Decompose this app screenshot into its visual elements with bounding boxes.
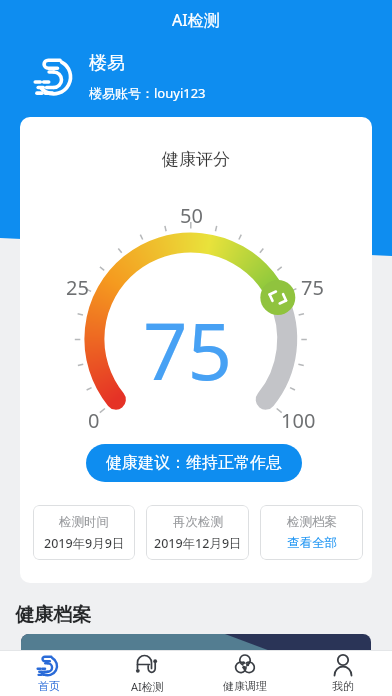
button[interactable]: 健康调理 (196, 650, 294, 696)
staticText: 25 (66, 274, 89, 296)
staticText: 楼易账号：louyi123 (89, 84, 206, 102)
button[interactable]: AI检测 (98, 650, 196, 696)
staticText: 检测档案 (287, 514, 337, 530)
staticText: 检测时间 (59, 514, 109, 530)
button[interactable] (21, 634, 371, 664)
button[interactable]: 首页 (0, 650, 98, 696)
staticText: 100 (281, 407, 316, 429)
button[interactable]: 我的 (294, 650, 392, 696)
button[interactable]: 再次检测 (146, 505, 249, 560)
staticText: 楼易 (89, 52, 125, 75)
staticText: 我的 (332, 679, 354, 693)
staticText: 0 (88, 407, 100, 429)
staticText: 健康建议：维持正常作息 (106, 453, 282, 473)
staticText: AI检测 (172, 9, 220, 31)
staticText: 首页 (38, 679, 60, 693)
staticText: 2019年12月9日 (154, 535, 242, 552)
staticText: 查看全部 (287, 535, 337, 551)
staticText: 2019年9月9日 (44, 535, 125, 552)
staticText: AI检测 (131, 679, 164, 694)
staticText: 再次检测 (173, 514, 223, 530)
staticText: 健康档案 (15, 603, 91, 627)
button[interactable]: 检测时间 (33, 505, 135, 560)
staticText: 75 (143, 297, 233, 387)
staticText: 健康调理 (223, 679, 267, 693)
button[interactable]: 健康建议：维持正常作息 (86, 444, 302, 482)
staticText: 健康评分 (162, 149, 230, 170)
staticText: 75 (301, 274, 324, 296)
button[interactable]: 检测档案 (260, 505, 363, 560)
staticText: 50 (180, 202, 203, 224)
